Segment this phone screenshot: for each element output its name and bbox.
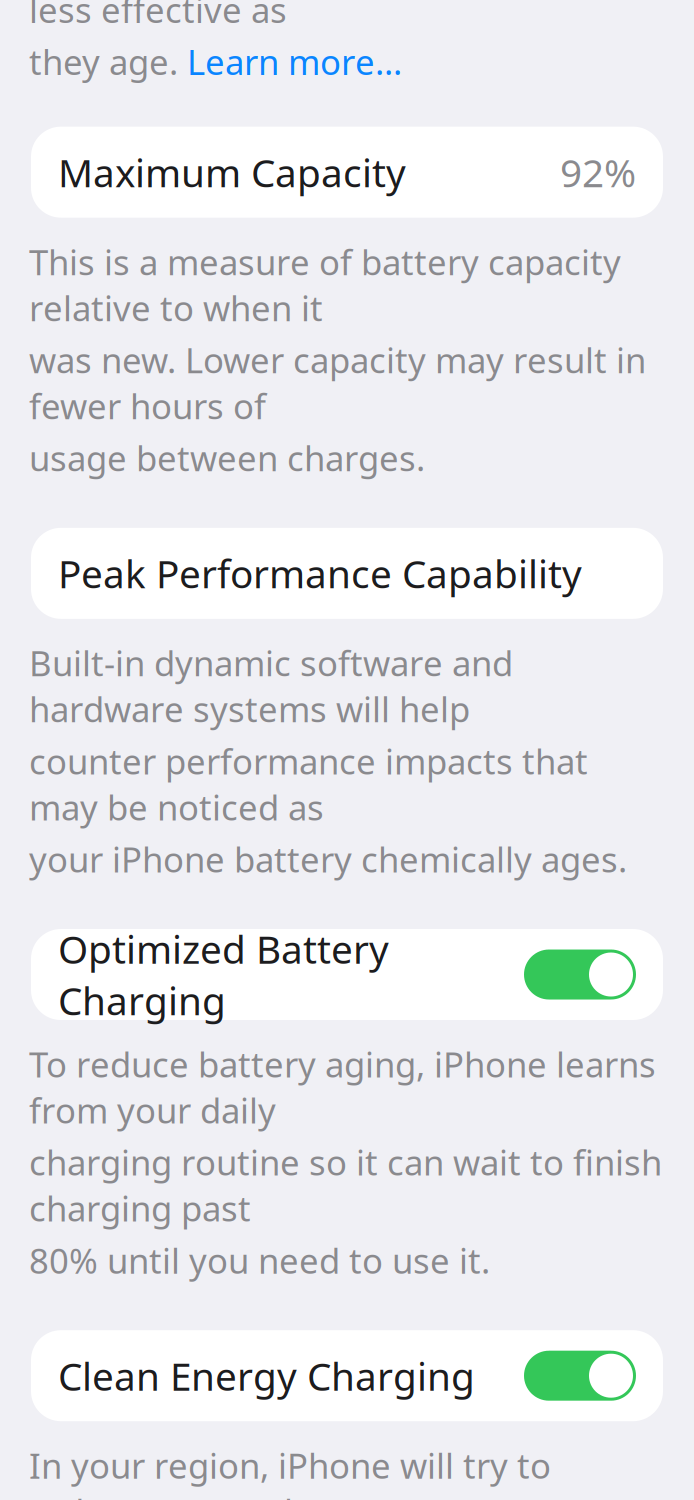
staticText: counter performance impacts that may be … (29, 738, 588, 830)
staticText: Optimized Battery Charging (58, 923, 389, 1026)
staticText: In your region, iPhone will try to reduc… (29, 1442, 551, 1500)
button[interactable]: Clean Energy Charging (31, 1330, 663, 1421)
button[interactable]: Learn more... (187, 39, 402, 85)
staticText: Peak Performance Capability (58, 548, 582, 599)
staticText: your iPhone battery chemically ages. (29, 836, 627, 882)
staticText: This is a measure of battery capacity re… (29, 239, 621, 331)
staticText: 92% (560, 146, 636, 198)
staticText: 80% until you need to use it. (29, 1237, 490, 1283)
button[interactable]: Optimized Battery Charging (31, 929, 663, 1020)
staticText: they age. (29, 39, 187, 85)
staticText: charging routine so it can wait to finis… (29, 1139, 662, 1231)
staticText: Clean Energy Charging (58, 1350, 475, 1401)
staticText: Maximum Capacity (58, 146, 406, 198)
staticText: To reduce battery aging, iPhone learns f… (29, 1041, 656, 1133)
button[interactable]: Maximum Capacity (31, 127, 663, 218)
staticText: consumable components that become less e… (29, 0, 655, 33)
staticText: usage between charges. (29, 435, 425, 481)
staticText: Learn more... (187, 39, 402, 85)
button[interactable]: Peak Performance Capability (31, 528, 663, 619)
staticText: was new. Lower capacity may result in fe… (29, 337, 646, 429)
staticText: Built-in dynamic software and hardware s… (29, 640, 513, 732)
